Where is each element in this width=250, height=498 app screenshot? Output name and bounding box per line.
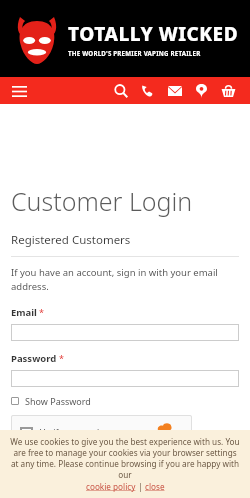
button[interactable]: Email us (161, 77, 188, 104)
button[interactable]: Password (11, 370, 239, 387)
staticText: If you have an account, sign in with you… (11, 266, 239, 293)
staticText: Verify you are human (40, 427, 126, 439)
staticText: Show Password (25, 395, 91, 407)
button[interactable]: Terms (168, 438, 182, 444)
button[interactable]: Store locator (188, 77, 215, 104)
button[interactable]: Verify you are human (11, 415, 192, 450)
staticText: TOTALLY WICKED (68, 21, 239, 47)
button[interactable]: Email (11, 324, 239, 341)
staticText: Registered Customers (11, 232, 131, 248)
button[interactable]: Totally Wicked home (14, 14, 240, 64)
button[interactable]: cookie policy (86, 481, 136, 492)
button[interactable]: Search (107, 77, 134, 104)
button[interactable]: Sign In (11, 455, 239, 477)
staticText: Email (11, 306, 37, 319)
button[interactable]: Call us (134, 77, 161, 104)
staticText: Customer Login (11, 184, 193, 218)
button[interactable]: Show Password (11, 395, 91, 407)
staticText: | (136, 481, 145, 492)
staticText: * (39, 306, 44, 318)
staticText: THE WORLD'S PREMIER VAPING RETAILER (68, 49, 201, 57)
button[interactable]: close (145, 481, 165, 492)
staticText: Password (11, 352, 57, 365)
button[interactable]: Basket (215, 77, 242, 104)
button[interactable]: Privacy (147, 438, 163, 444)
staticText: We use cookies to give you the best expe… (10, 436, 240, 480)
staticText: * (59, 352, 64, 364)
staticText: • (163, 438, 168, 444)
staticText: Sign In (108, 459, 143, 473)
button[interactable]: Menu (8, 80, 30, 102)
